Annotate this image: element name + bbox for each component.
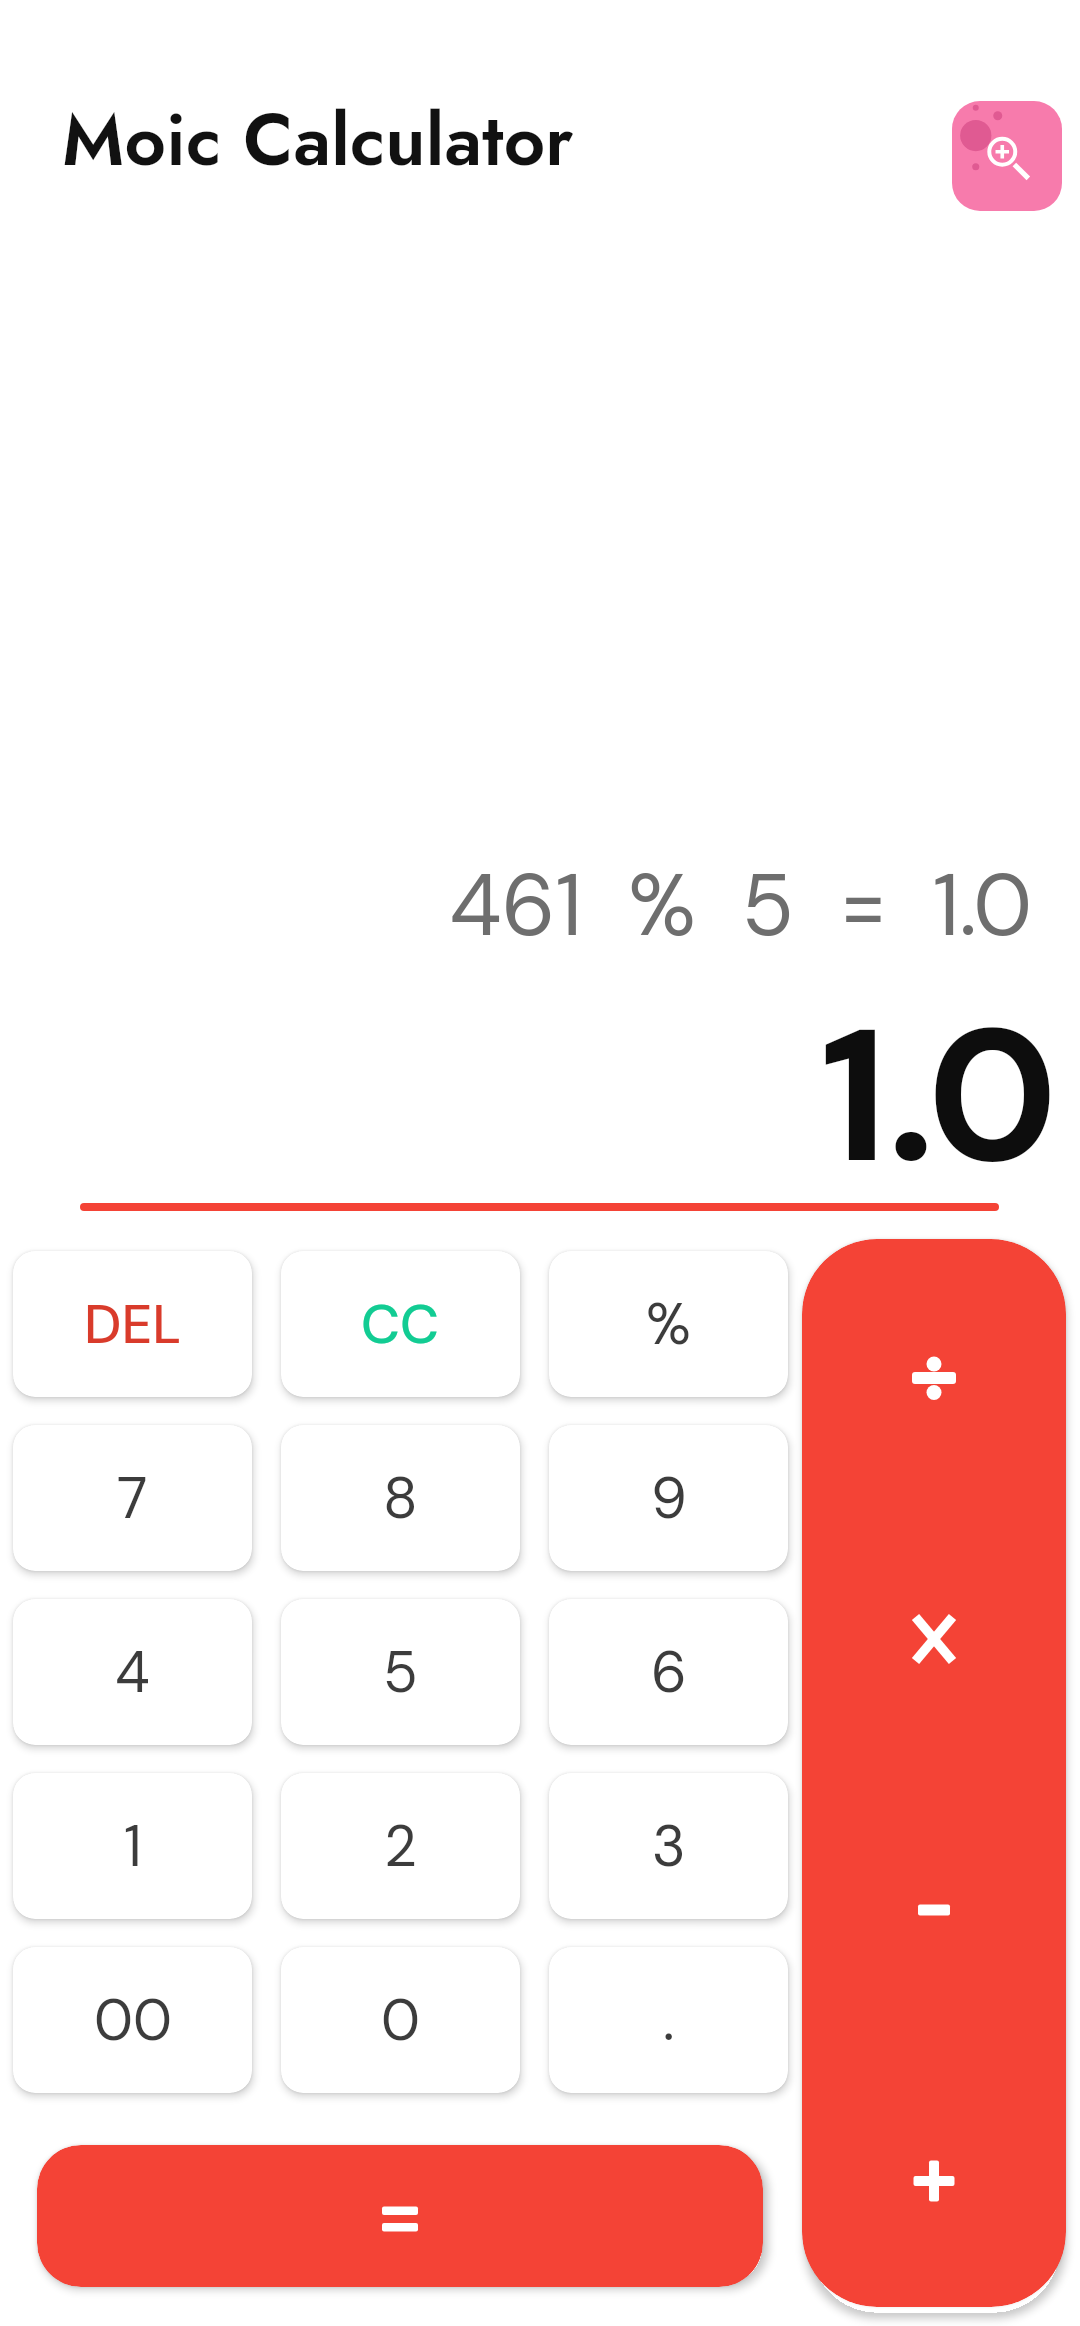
button[interactable]: 5 [281, 1599, 520, 1745]
staticText: CC [361, 1289, 440, 1359]
staticText: 461 % 5 = 1.0 [449, 850, 1032, 962]
button[interactable]: 1 [13, 1773, 252, 1919]
button[interactable]: Search [952, 101, 1062, 211]
staticText: . [663, 1983, 675, 2057]
staticText: 1.0 [819, 975, 1058, 1217]
button[interactable]: 00 [13, 1947, 252, 2093]
button[interactable]: % [549, 1251, 788, 1397]
staticText: 4 [115, 1635, 150, 1709]
staticText: 7 [117, 1461, 148, 1535]
staticText: 3 [652, 1809, 686, 1883]
button[interactable]: Divide [802, 1239, 1066, 1506]
staticText: 6 [651, 1635, 687, 1709]
staticText: 9 [651, 1461, 687, 1535]
staticText: 2 [384, 1809, 417, 1883]
button[interactable]: 8 [281, 1425, 520, 1571]
button[interactable]: CC [281, 1251, 520, 1397]
button[interactable]: 2 [281, 1773, 520, 1919]
button[interactable]: Subtract [802, 1771, 1066, 2038]
staticText: 00 [94, 1983, 172, 2057]
button[interactable] [37, 2145, 763, 2287]
button[interactable]: 4 [13, 1599, 252, 1745]
button[interactable]: Multiply [802, 1500, 1066, 1767]
staticText: Moic Calculator [62, 88, 574, 192]
staticText: 8 [383, 1461, 418, 1535]
button[interactable]: 9 [549, 1425, 788, 1571]
staticText: 0 [381, 1983, 420, 2057]
staticText: 5 [383, 1635, 418, 1709]
staticText: DEL [84, 1289, 182, 1359]
button[interactable]: Add [802, 2042, 1066, 2307]
staticText: 1 [124, 1809, 142, 1883]
staticText: % [646, 1287, 691, 1361]
button[interactable]: 6 [549, 1599, 788, 1745]
button[interactable]: 7 [13, 1425, 252, 1571]
button[interactable]: . [549, 1947, 788, 2093]
button[interactable]: 3 [549, 1773, 788, 1919]
button[interactable]: DEL [13, 1251, 252, 1397]
button[interactable]: 0 [281, 1947, 520, 2093]
